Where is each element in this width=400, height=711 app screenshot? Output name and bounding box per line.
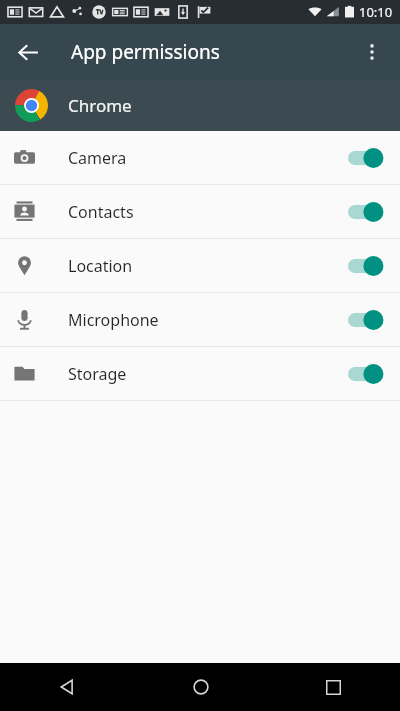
staticText: Storage [68,363,348,385]
button[interactable]: Location [0,239,400,292]
button[interactable]: Chrome [0,80,400,131]
button[interactable]: Contacts [0,185,400,238]
button[interactable]: Camera [0,131,400,184]
button[interactable]: Recent apps [267,663,400,711]
button[interactable]: Storage [0,347,400,400]
button[interactable]: Contacts permission toggle [348,197,386,227]
staticText: Camera [68,147,348,169]
button[interactable]: Microphone [0,293,400,346]
button[interactable]: More options [348,28,396,76]
staticText: 10:10 [359,3,393,21]
button[interactable]: Microphone permission toggle [348,305,386,335]
staticText: Chrome [68,94,132,117]
staticText: Contacts [68,201,348,223]
staticText: App permissions [71,39,220,65]
staticText: Location [68,255,348,277]
button[interactable]: Camera permission toggle [348,143,386,173]
button[interactable]: Home [134,663,267,711]
button[interactable]: Back [4,28,52,76]
staticText: Microphone [68,309,348,331]
button[interactable]: Location permission toggle [348,251,386,281]
button[interactable]: Back [0,663,134,711]
button[interactable]: Storage permission toggle [348,359,386,389]
